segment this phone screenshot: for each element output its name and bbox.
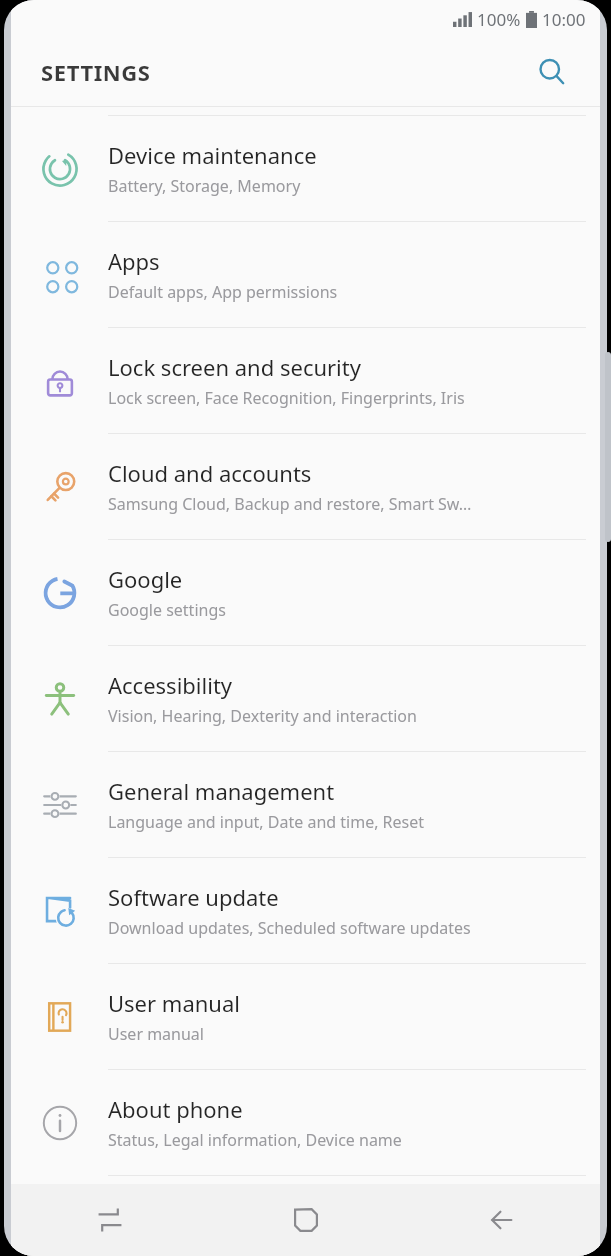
button[interactable]: Apps xyxy=(11,222,600,327)
staticText: General management xyxy=(108,776,335,806)
button[interactable]: Search xyxy=(530,50,574,94)
staticText: Cloud and accounts xyxy=(108,458,312,488)
staticText: Default apps, App permissions xyxy=(108,281,338,303)
staticText: Download updates, Scheduled software upd… xyxy=(108,917,471,939)
button[interactable]: General management xyxy=(11,752,600,857)
button[interactable]: Recents xyxy=(11,1184,208,1256)
button[interactable]: User manual xyxy=(11,964,600,1069)
button[interactable]: About phone xyxy=(11,1070,600,1175)
button[interactable]: Accessibility xyxy=(11,646,600,751)
staticText: Google settings xyxy=(108,599,226,621)
button[interactable]: Back xyxy=(404,1184,600,1256)
staticText: 100% xyxy=(477,8,521,31)
staticText: Google xyxy=(108,564,183,594)
staticText: Samsung Cloud, Backup and restore, Smart… xyxy=(108,493,472,515)
button[interactable]: Home xyxy=(208,1184,404,1256)
button[interactable]: Software update xyxy=(11,858,600,963)
staticText: Lock screen and security xyxy=(108,352,361,382)
staticText: User manual xyxy=(108,1023,204,1045)
staticText: User manual xyxy=(108,988,240,1018)
button[interactable]: Device maintenance xyxy=(11,116,600,221)
button[interactable]: Lock screen and security xyxy=(11,328,600,433)
staticText: Battery, Storage, Memory xyxy=(108,175,301,197)
button[interactable]: Cloud and accounts xyxy=(11,434,600,539)
staticText: Device maintenance xyxy=(108,140,317,170)
staticText: Apps xyxy=(108,246,160,276)
staticText: SETTINGS xyxy=(41,57,151,87)
staticText: Software update xyxy=(108,882,279,912)
staticText: Language and input, Date and time, Reset xyxy=(108,811,425,833)
staticText: About phone xyxy=(108,1094,243,1124)
staticText: Lock screen, Face Recognition, Fingerpri… xyxy=(108,387,465,409)
staticText: Accessibility xyxy=(108,670,233,700)
staticText: Status, Legal information, Device name xyxy=(108,1129,402,1151)
staticText: 10:00 xyxy=(542,8,586,31)
staticText: Vision, Hearing, Dexterity and interacti… xyxy=(108,705,417,727)
button[interactable]: Google xyxy=(11,540,600,645)
